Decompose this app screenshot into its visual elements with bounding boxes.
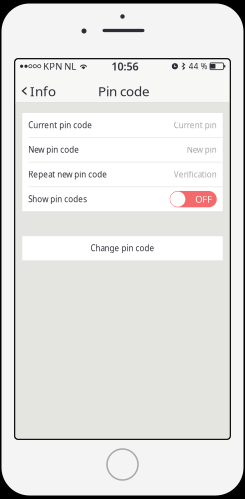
staticText: New pin code <box>28 144 79 155</box>
staticText: Pin code <box>98 82 150 100</box>
staticText: 10:56 <box>111 59 138 73</box>
staticText: Current pin <box>174 120 217 130</box>
staticText: Repeat new pin code <box>28 169 107 180</box>
staticText: 44 % <box>189 61 208 71</box>
staticText: New pin <box>187 144 217 155</box>
staticText: Info <box>30 82 56 100</box>
staticText: Verification <box>174 169 217 180</box>
staticText: Change pin code <box>90 243 154 253</box>
staticText: OFF <box>195 193 212 205</box>
button[interactable]: Show pin codes toggle, off <box>170 187 217 211</box>
staticText: Show pin codes <box>28 194 87 204</box>
staticText: KPN NL <box>43 60 76 72</box>
button[interactable]: Info <box>15 73 61 103</box>
staticText: Current pin code <box>28 120 92 130</box>
button[interactable]: Change pin code <box>22 236 223 260</box>
